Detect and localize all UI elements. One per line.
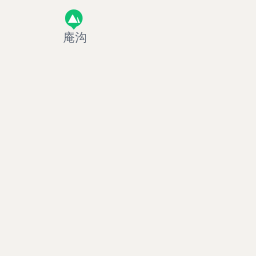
staticText: 庵沟 [63, 30, 87, 45]
button[interactable]: 庵沟 [0, 0, 256, 256]
